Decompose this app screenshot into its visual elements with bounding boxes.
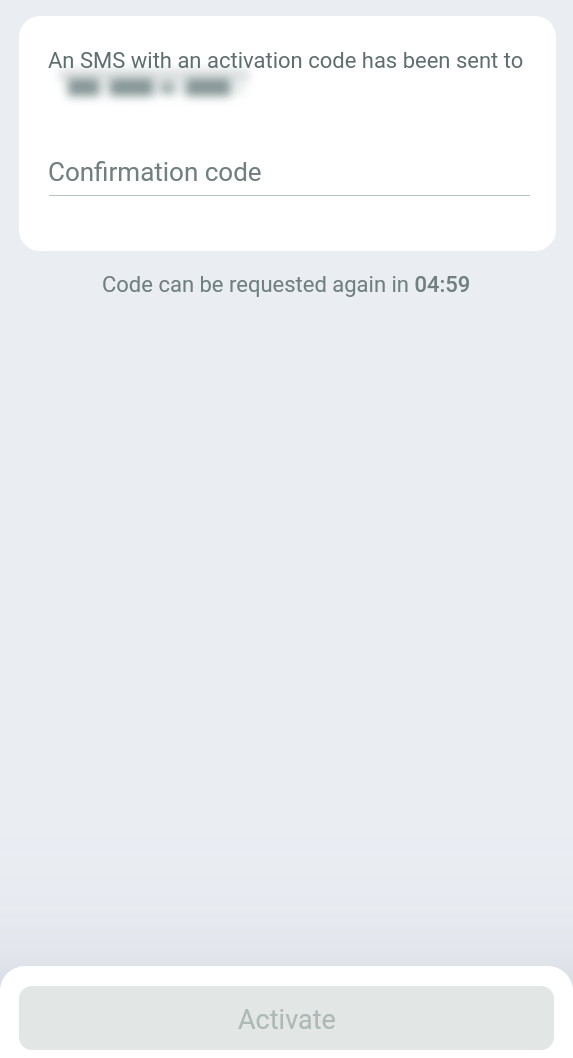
staticText: An SMS with an activation code has been …: [48, 48, 524, 74]
other: Phone number hidden: [49, 58, 279, 108]
staticText: Activate: [238, 1004, 336, 1036]
button[interactable]: Confirmation code: [48, 149, 530, 196]
button[interactable]: Activate: [19, 986, 554, 1050]
staticText: Confirmation code: [48, 157, 262, 187]
staticText: Code can be requested again in 04:59: [102, 272, 471, 298]
